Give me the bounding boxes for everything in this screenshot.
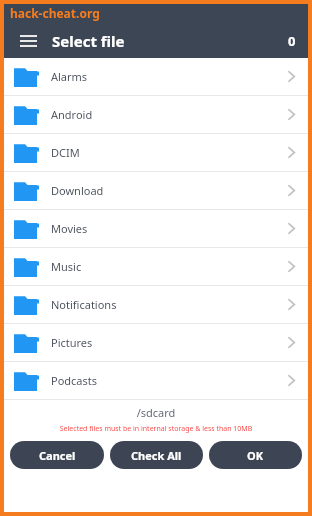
button[interactable]: Movies [4, 210, 308, 247]
button[interactable]: Check All [110, 441, 203, 469]
button[interactable]: Android [4, 96, 308, 133]
staticText: Check All [131, 448, 182, 463]
button[interactable]: Pictures [4, 324, 308, 361]
staticText: DCIM [51, 145, 80, 160]
staticText: /sdcard [4, 405, 308, 420]
button[interactable]: Music [4, 248, 308, 285]
button[interactable]: Podcasts [4, 362, 308, 399]
staticText: Select file [52, 31, 125, 51]
staticText: Selected files must be in internal stora… [4, 424, 308, 434]
staticText: Music [51, 259, 82, 274]
button[interactable]: Open navigation menu [16, 29, 40, 53]
button[interactable]: Download [4, 172, 308, 209]
button[interactable]: OK [209, 441, 302, 469]
staticText: Cancel [39, 448, 76, 463]
staticText: OK [247, 448, 264, 463]
staticText: Podcasts [51, 373, 98, 388]
button[interactable]: DCIM [4, 134, 308, 171]
button[interactable]: Notifications [4, 286, 308, 323]
button[interactable]: Cancel [10, 441, 104, 469]
button[interactable]: Alarms [4, 58, 308, 95]
staticText: Download [51, 183, 104, 198]
staticText: 0 [288, 32, 296, 50]
staticText: Android [51, 107, 93, 122]
staticText: Alarms [51, 69, 88, 84]
staticText: Notifications [51, 297, 117, 312]
staticText: hack-cheat.org [10, 5, 100, 21]
staticText: Pictures [51, 335, 93, 350]
staticText: Movies [51, 221, 88, 236]
